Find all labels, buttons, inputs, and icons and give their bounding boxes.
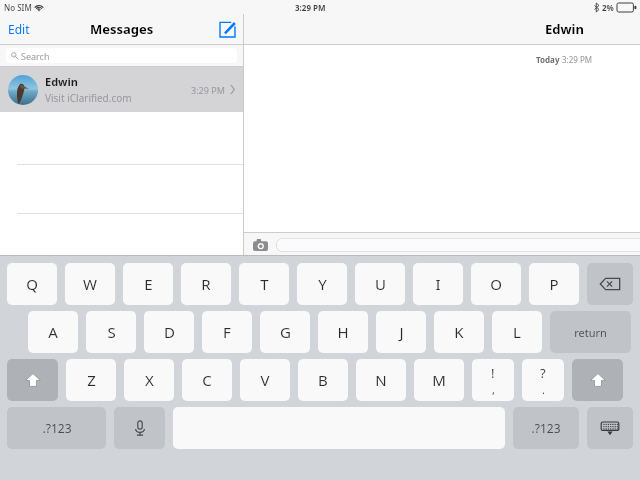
staticText: 3:29 PM: [295, 2, 326, 13]
button[interactable]: H: [318, 311, 368, 353]
staticText: Today: [536, 54, 562, 65]
button[interactable]: C: [182, 359, 232, 401]
staticText: R: [201, 274, 211, 294]
staticText: D: [164, 322, 175, 342]
button[interactable]: X: [124, 359, 174, 401]
staticText: G: [280, 322, 291, 342]
staticText: A: [48, 322, 58, 342]
staticText: return: [574, 325, 607, 340]
button[interactable]: Shift: [7, 359, 58, 401]
button[interactable]: B: [298, 359, 348, 401]
button[interactable]: [276, 238, 640, 252]
staticText: I: [435, 274, 441, 294]
staticText: Z: [87, 370, 96, 390]
staticText: M: [432, 370, 446, 390]
staticText: H: [337, 322, 349, 342]
staticText: S: [107, 322, 116, 342]
button[interactable]: .?123: [7, 407, 106, 449]
button[interactable]: .?123: [513, 407, 579, 449]
staticText: .?123: [42, 420, 72, 436]
staticText: 3:29 PM: [191, 84, 225, 96]
staticText: 3:29 PM: [562, 54, 593, 65]
button[interactable]: Q: [7, 263, 57, 305]
button[interactable]: V: [240, 359, 290, 401]
button[interactable]: P: [529, 263, 579, 305]
staticText: .: [542, 382, 545, 397]
button[interactable]: T: [239, 263, 289, 305]
staticText: Search: [21, 50, 50, 62]
staticText: !: [491, 364, 495, 382]
staticText: F: [223, 322, 231, 342]
button[interactable]: I: [413, 263, 463, 305]
button[interactable]: ?: [522, 359, 564, 401]
staticText: ?: [540, 364, 546, 382]
staticText: L: [513, 322, 521, 342]
button[interactable]: Edit: [0, 16, 38, 42]
button[interactable]: A: [28, 311, 78, 353]
button[interactable]: Z: [66, 359, 116, 401]
button[interactable]: Shift: [572, 359, 623, 401]
staticText: P: [549, 274, 559, 294]
button[interactable]: G: [260, 311, 310, 353]
button[interactable]: J: [376, 311, 426, 353]
staticText: B: [318, 370, 328, 390]
button[interactable]: O: [471, 263, 521, 305]
button[interactable]: L: [492, 311, 542, 353]
button[interactable]: D: [144, 311, 194, 353]
staticText: Edit: [8, 21, 30, 37]
button[interactable]: N: [356, 359, 406, 401]
staticText: K: [454, 322, 464, 342]
staticText: E: [144, 274, 153, 294]
staticText: O: [490, 274, 502, 294]
staticText: Visit iClarified.com: [45, 91, 132, 105]
staticText: C: [202, 370, 212, 390]
button[interactable]: Dictation: [114, 407, 165, 449]
button[interactable]: R: [181, 263, 231, 305]
staticText: ,: [492, 382, 495, 397]
staticText: U: [375, 274, 386, 294]
staticText: N: [375, 370, 387, 390]
staticText: W: [83, 274, 97, 294]
button[interactable]: M: [414, 359, 464, 401]
staticText: Messages: [90, 20, 154, 38]
staticText: 2%: [602, 2, 614, 13]
button[interactable]: return: [550, 311, 631, 353]
staticText: T: [260, 274, 269, 294]
staticText: X: [145, 370, 154, 390]
button[interactable]: Compose new message: [212, 16, 243, 43]
button[interactable]: Edwin: [0, 67, 243, 112]
button[interactable]: E: [123, 263, 173, 305]
staticText: V: [260, 370, 270, 390]
button[interactable]: S: [86, 311, 136, 353]
staticText: Edwin: [45, 74, 78, 89]
button[interactable]: U: [355, 263, 405, 305]
button[interactable]: K: [434, 311, 484, 353]
button[interactable]: !: [472, 359, 514, 401]
staticText: No SIM: [4, 2, 32, 13]
staticText: J: [399, 322, 404, 342]
staticText: .?123: [531, 420, 561, 436]
staticText: Y: [318, 274, 327, 294]
button[interactable]: F: [202, 311, 252, 353]
button[interactable]: W: [65, 263, 115, 305]
button[interactable]: Backspace: [587, 263, 633, 305]
button[interactable]: Attach photo: [250, 236, 271, 254]
button[interactable]: Y: [297, 263, 347, 305]
button[interactable]: Search: [6, 48, 237, 63]
button[interactable]: Hide keyboard: [587, 407, 633, 449]
staticText: Q: [26, 274, 38, 294]
staticText: Edwin: [545, 20, 584, 38]
